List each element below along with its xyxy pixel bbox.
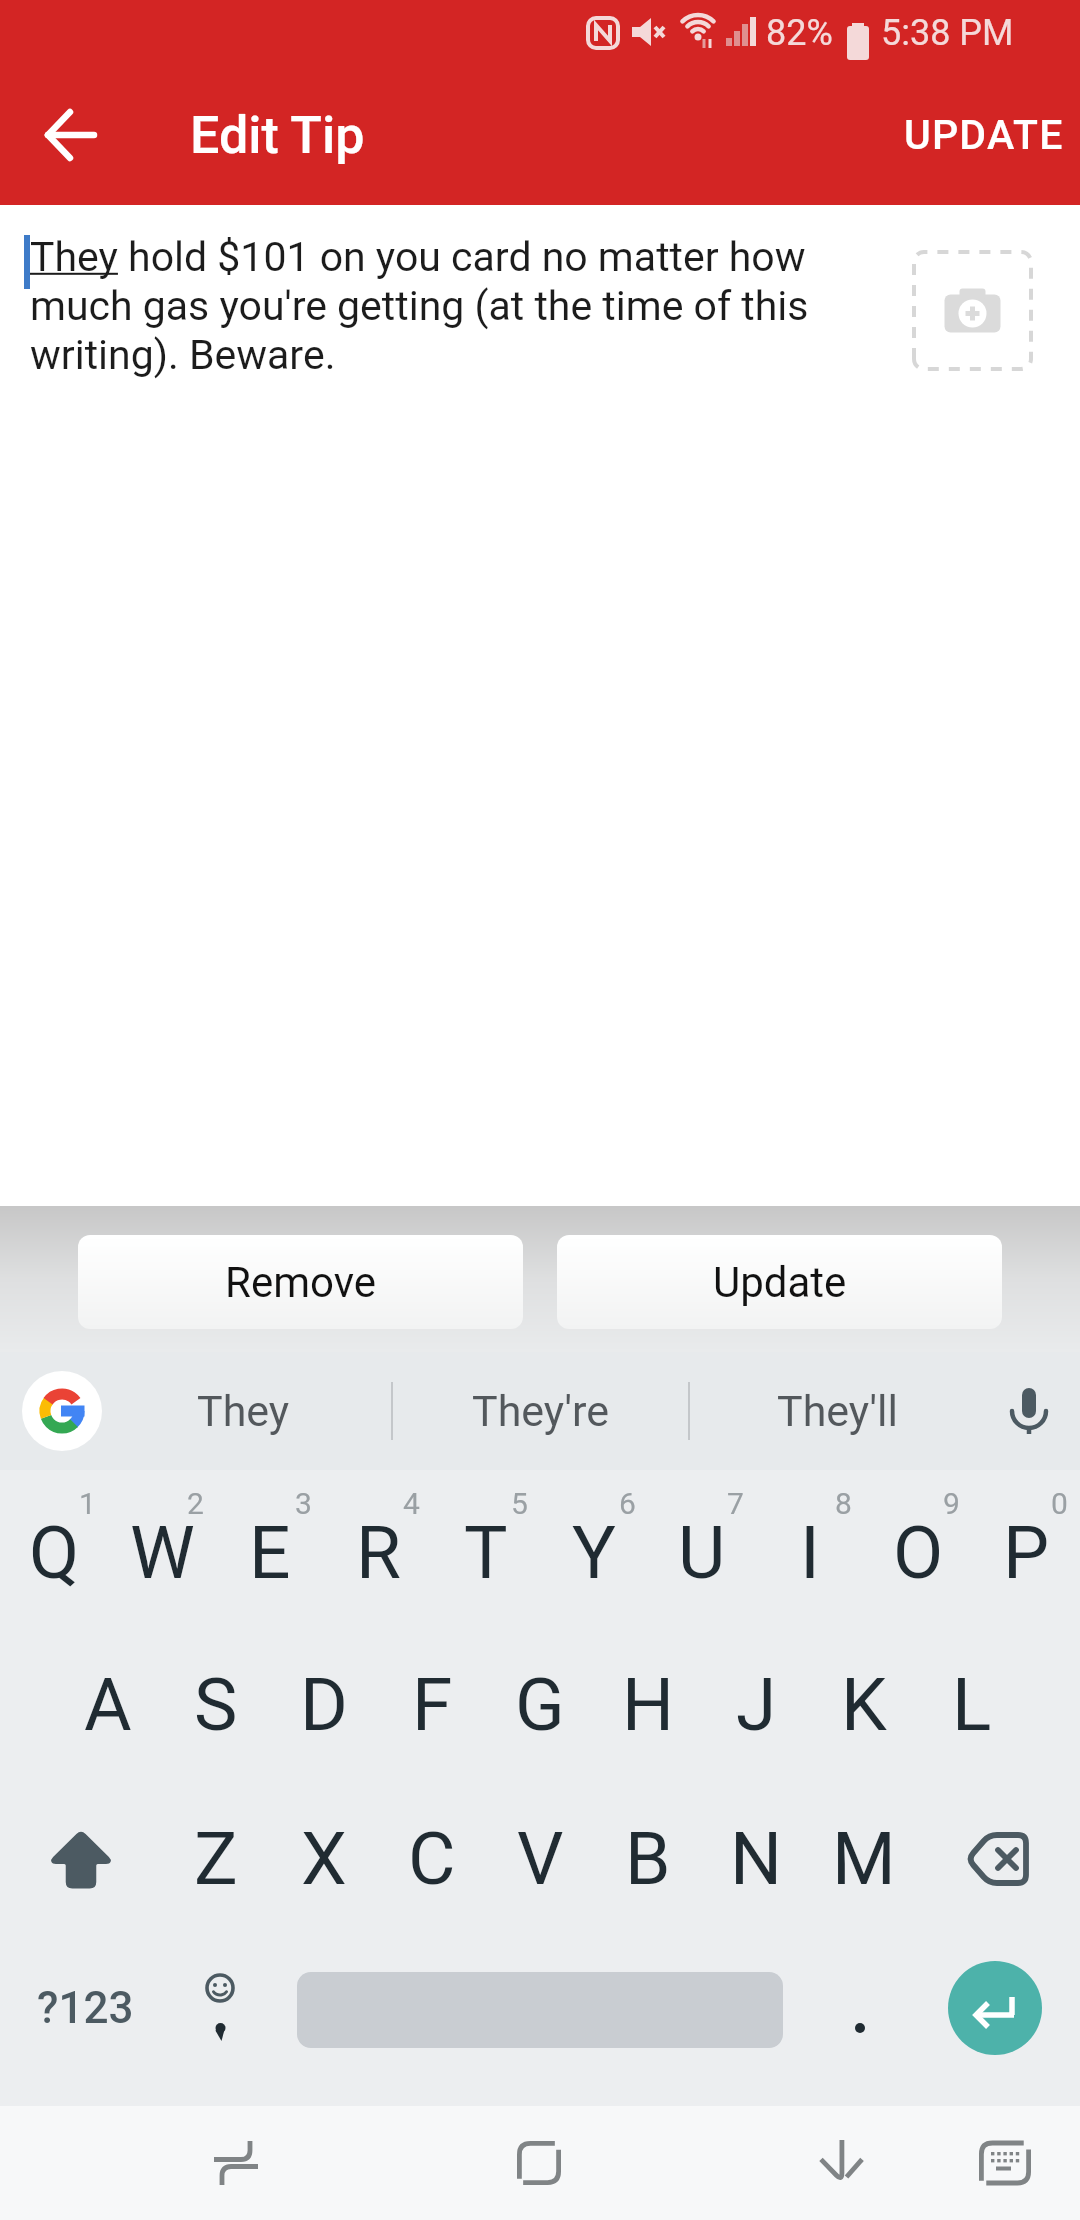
staticText: M [832, 1816, 896, 1902]
staticText: ?123 [37, 1982, 134, 2034]
button[interactable]: 9 [864, 1478, 972, 1628]
button[interactable]: 8 [756, 1478, 864, 1628]
staticText: L [952, 1662, 992, 1748]
staticText: 3 [295, 1486, 312, 1521]
button[interactable]: 3 [216, 1478, 324, 1628]
button[interactable]: S [162, 1630, 270, 1780]
button[interactable] [0, 1785, 162, 1933]
staticText: T [464, 1510, 508, 1596]
button[interactable]: 4 [324, 1478, 432, 1628]
staticText: 1 [79, 1486, 96, 1521]
staticText: X [301, 1816, 347, 1902]
staticText: 6 [619, 1486, 636, 1521]
staticText: D [300, 1662, 348, 1748]
button[interactable] [912, 250, 1033, 371]
button[interactable] [270, 1933, 810, 2083]
button[interactable]: 2 [108, 1478, 216, 1628]
staticText: S [194, 1662, 238, 1748]
button[interactable]: 5 [432, 1478, 540, 1628]
staticText: They [197, 1386, 290, 1436]
staticText: A [84, 1662, 132, 1748]
staticText: 7 [727, 1486, 744, 1521]
button[interactable]: They're [393, 1352, 688, 1470]
button[interactable]: UPDATE [904, 111, 1064, 159]
staticText: J [736, 1662, 777, 1748]
button[interactable] [36, 99, 108, 171]
staticText: N [730, 1816, 783, 1902]
staticText: K [841, 1662, 887, 1748]
staticText: 5 [511, 1486, 528, 1521]
staticText: C [408, 1816, 456, 1902]
staticText: W [130, 1510, 195, 1596]
button[interactable] [918, 1785, 1080, 1933]
button[interactable] [965, 2123, 1045, 2203]
staticText: 0 [1051, 1486, 1068, 1521]
button[interactable] [910, 1933, 1080, 2083]
button[interactable]: G [486, 1630, 594, 1780]
staticText: P [1003, 1510, 1050, 1596]
staticText: 82% [766, 12, 833, 54]
button[interactable]: A [54, 1630, 162, 1780]
staticText: G [515, 1662, 565, 1748]
button[interactable]: H [594, 1630, 702, 1780]
staticText: V [517, 1816, 564, 1902]
staticText: 8 [835, 1486, 852, 1521]
button[interactable]: 6 [540, 1478, 648, 1628]
button[interactable]: 1 [0, 1478, 108, 1628]
staticText: 2 [187, 1486, 204, 1521]
button[interactable] [196, 2123, 276, 2203]
staticText: U [678, 1510, 726, 1596]
button[interactable]: Update [557, 1235, 1002, 1329]
button[interactable]: L [918, 1630, 1026, 1780]
button[interactable]: D [270, 1630, 378, 1780]
staticText: Z [194, 1816, 238, 1902]
button[interactable]: 7 [648, 1478, 756, 1628]
button[interactable]: C [378, 1785, 486, 1933]
button[interactable]: M [810, 1785, 918, 1933]
staticText: Y [572, 1510, 616, 1596]
button[interactable]: Z [162, 1785, 270, 1933]
staticText: R [356, 1510, 401, 1596]
button[interactable]: They'll [690, 1352, 985, 1470]
button[interactable]: Remove [78, 1235, 523, 1329]
staticText: UPDATE [904, 111, 1064, 159]
button[interactable] [801, 2123, 881, 2203]
button[interactable]: X [270, 1785, 378, 1933]
button[interactable] [22, 1371, 102, 1451]
button[interactable]: J [702, 1630, 810, 1780]
button[interactable]: F [378, 1630, 486, 1780]
button[interactable] [170, 1933, 270, 2083]
staticText: Q [29, 1510, 80, 1596]
staticText: They hold $101 on you card no matter how… [30, 233, 809, 379]
staticText: They're [472, 1386, 610, 1436]
staticText: 4 [403, 1486, 420, 1521]
button[interactable]: N [702, 1785, 810, 1933]
button[interactable] [810, 1933, 910, 2083]
button[interactable]: ?123 [0, 1933, 170, 2083]
staticText: E [249, 1510, 291, 1596]
button[interactable]: V [486, 1785, 594, 1933]
button[interactable]: 0 [972, 1478, 1080, 1628]
staticText: H [622, 1662, 675, 1748]
button[interactable] [499, 2123, 579, 2203]
staticText: O [893, 1510, 944, 1596]
staticText: 9 [943, 1486, 960, 1521]
staticText: I [800, 1510, 820, 1596]
button[interactable]: K [810, 1630, 918, 1780]
staticText: Update [713, 1258, 847, 1307]
button[interactable]: They [95, 1352, 391, 1470]
staticText: 5:38 PM [881, 12, 1014, 54]
staticText: They'll [777, 1386, 898, 1436]
staticText: Edit Tip [190, 105, 365, 166]
button[interactable]: B [594, 1785, 702, 1933]
staticText: Remove [225, 1258, 376, 1307]
staticText: B [625, 1816, 671, 1902]
staticText: F [412, 1662, 453, 1748]
